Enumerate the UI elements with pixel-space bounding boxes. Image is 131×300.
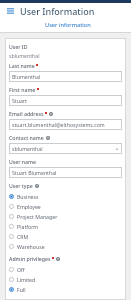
button[interactable]: Project Manager (9, 211, 122, 221)
staticText: Email address (9, 110, 44, 117)
staticText: Limited (17, 276, 36, 283)
button[interactable]: Off (9, 264, 122, 274)
staticText: sblumenthal (12, 145, 43, 152)
button[interactable]: Stuart Blumenthal (9, 167, 122, 178)
staticText: Business (17, 193, 39, 200)
staticText: Full (17, 286, 26, 293)
staticText: Off (17, 266, 25, 273)
staticText: Admin privileges (9, 255, 51, 262)
staticText: Last name (9, 62, 35, 69)
button[interactable]: Menu (5, 6, 16, 17)
staticText: Project Manager (17, 213, 58, 220)
staticText: User type (9, 182, 33, 189)
button[interactable]: Platform (9, 221, 122, 231)
button[interactable]: Limited (9, 274, 122, 284)
staticText: Stuart Blumenthal (12, 169, 57, 176)
button[interactable]: Full (9, 284, 122, 294)
staticText: CRM (17, 233, 29, 240)
button[interactable]: sblumenthal (9, 143, 122, 154)
staticText: Contact name (9, 134, 44, 141)
staticText: User information (45, 21, 91, 29)
staticText: Status (9, 298, 25, 300)
staticText: User Information (20, 5, 95, 17)
button[interactable]: Blumenthal (9, 71, 122, 82)
button[interactable]: Employee (9, 201, 122, 211)
staticText: Platform (17, 223, 39, 230)
staticText: Warehouse (17, 243, 45, 250)
button[interactable]: Stuart (9, 95, 122, 106)
button[interactable]: Warehouse (9, 241, 122, 251)
button[interactable]: CRM (9, 231, 122, 241)
button[interactable]: Business (9, 191, 122, 201)
staticText: sblumenthal (9, 52, 40, 59)
button[interactable]: User information (5, 19, 131, 33)
staticText: First name (9, 86, 36, 93)
staticText: stuart.blumenthal@elthosystems.com (12, 121, 105, 128)
staticText: Blumenthal (12, 73, 41, 80)
button[interactable]: stuart.blumenthal@elthosystems.com (9, 119, 122, 130)
staticText: User name (9, 158, 36, 165)
staticText: Employee (17, 203, 41, 210)
staticText: Stuart (12, 97, 27, 104)
staticText: User ID (9, 43, 28, 50)
